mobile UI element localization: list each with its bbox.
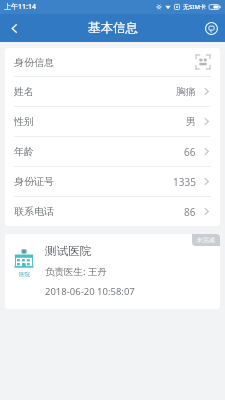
button[interactable]: 联系电话: [5, 197, 220, 226]
button[interactable]: Back: [0, 14, 28, 42]
staticText: 姓名: [14, 85, 34, 98]
staticText: 66: [184, 145, 196, 159]
staticText: 性别: [14, 115, 34, 128]
button[interactable]: Scan: [195, 54, 211, 70]
staticText: 未完成: [197, 236, 215, 244]
staticText: 1335: [173, 175, 196, 189]
staticText: 身份证号: [14, 175, 54, 188]
staticText: 2018-06-20 10:58:07: [45, 285, 135, 298]
staticText: 负责医生: 王丹: [45, 265, 108, 278]
button[interactable]: 身份信息: [5, 48, 220, 76]
button[interactable]: 姓名: [5, 77, 220, 106]
staticText: 上午11:14: [4, 2, 36, 12]
staticText: 测试医院: [45, 244, 91, 258]
button[interactable]: 身份证号: [5, 167, 220, 196]
staticText: 身份信息: [14, 56, 54, 69]
staticText: 86: [184, 205, 196, 219]
button[interactable]: Messages: [197, 14, 225, 42]
staticText: 医院: [19, 271, 30, 278]
button[interactable]: 性别: [5, 107, 220, 136]
staticText: 无SIM卡: [183, 3, 206, 11]
staticText: 年龄: [14, 145, 34, 158]
button[interactable]: 医院: [5, 234, 220, 309]
button[interactable]: 年龄: [5, 137, 220, 166]
staticText: 胸痛: [176, 85, 196, 98]
staticText: 男: [186, 115, 196, 128]
staticText: 联系电话: [14, 205, 54, 218]
staticText: 基本信息: [88, 20, 138, 36]
